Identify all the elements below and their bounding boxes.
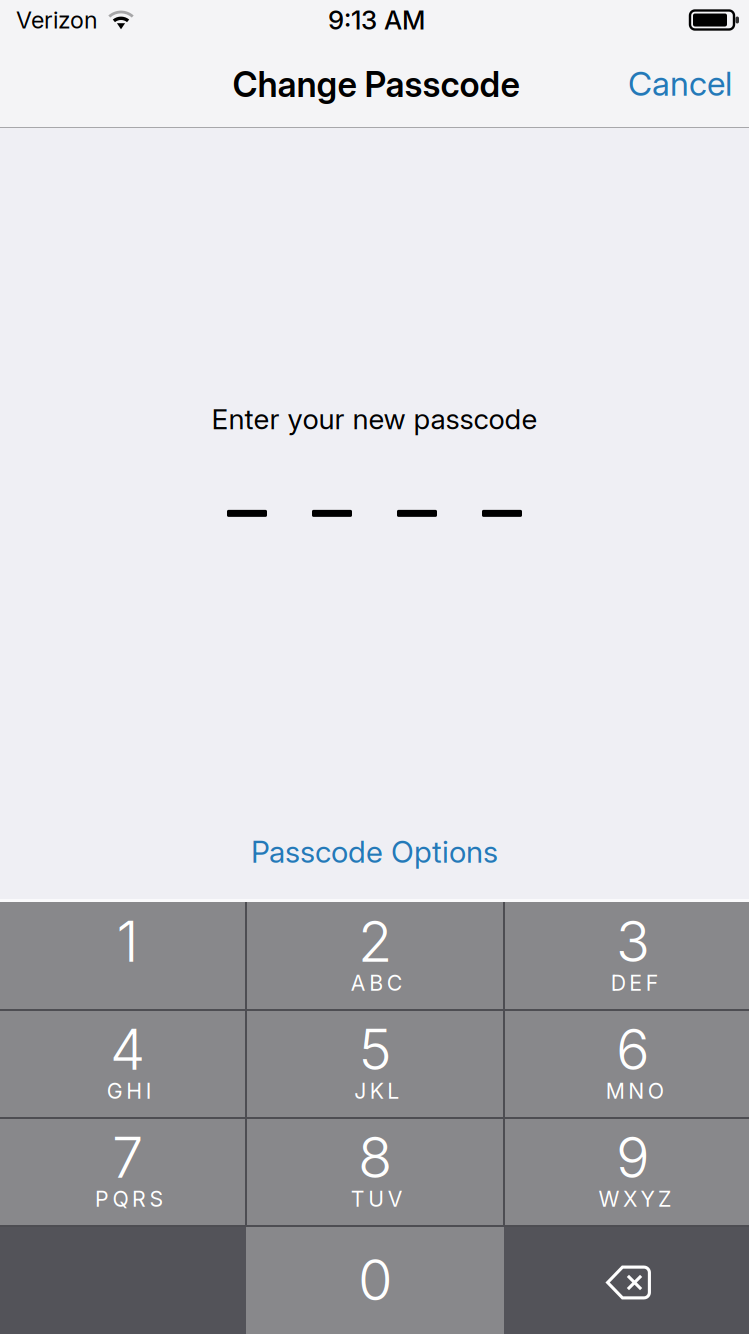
button[interactable]: 7 (0, 1118, 245, 1226)
staticText: 3 (616, 907, 650, 975)
staticText: 6 (616, 1015, 650, 1083)
staticText: 9:13 AM (328, 4, 425, 36)
button[interactable]: 2 (247, 902, 503, 1010)
staticText: B (369, 970, 383, 996)
button[interactable]: 0 (246, 1226, 504, 1334)
staticText: Passcode Options (251, 834, 498, 870)
staticText: Y (640, 1186, 654, 1212)
staticText: G (107, 1078, 123, 1104)
staticText: Q (112, 1186, 128, 1212)
button[interactable]: Passcode Options (227, 822, 522, 882)
button[interactable]: 1 (0, 902, 245, 1010)
button[interactable]: 5 (247, 1010, 503, 1118)
button[interactable]: Cancel (628, 40, 749, 127)
staticText: X (623, 1186, 637, 1212)
staticText: R (132, 1186, 146, 1212)
staticText: D (611, 970, 626, 996)
staticText: F (646, 970, 659, 996)
staticText: 1 (116, 907, 138, 975)
staticText: J (354, 1078, 366, 1104)
staticText: T (351, 1186, 365, 1212)
staticText: Z (658, 1186, 671, 1212)
staticText: A (351, 970, 366, 996)
button[interactable]: 4 (0, 1010, 245, 1118)
staticText: L (387, 1078, 399, 1104)
button[interactable]: 9 (505, 1118, 749, 1226)
button[interactable]: 8 (247, 1118, 503, 1226)
staticText: Cancel (628, 63, 732, 104)
staticText: 8 (358, 1123, 392, 1191)
staticText: S (150, 1186, 164, 1212)
staticText: U (368, 1186, 384, 1212)
staticText: H (126, 1078, 142, 1104)
staticText: 4 (110, 1015, 145, 1083)
staticText: Verizon (16, 6, 98, 34)
staticText: W (598, 1186, 619, 1212)
staticText: 5 (358, 1015, 391, 1083)
staticText: Change Passcode (232, 64, 519, 105)
staticText: 9 (616, 1123, 650, 1191)
staticText: 2 (358, 907, 392, 975)
staticText: 7 (112, 1123, 143, 1191)
button[interactable]: 3 (505, 902, 749, 1010)
staticText: V (388, 1186, 403, 1212)
staticText: O (648, 1078, 664, 1104)
staticText: Enter your new passcode (211, 402, 537, 436)
staticText: E (629, 970, 642, 996)
staticText: N (628, 1078, 644, 1104)
staticText: M (606, 1078, 625, 1104)
button[interactable]: 6 (505, 1010, 749, 1118)
staticText: I (146, 1078, 152, 1104)
staticText: P (95, 1186, 109, 1212)
staticText: 0 (358, 1246, 393, 1314)
staticText: K (370, 1078, 384, 1104)
staticText: C (387, 970, 403, 996)
button[interactable]: Delete (504, 1226, 749, 1334)
